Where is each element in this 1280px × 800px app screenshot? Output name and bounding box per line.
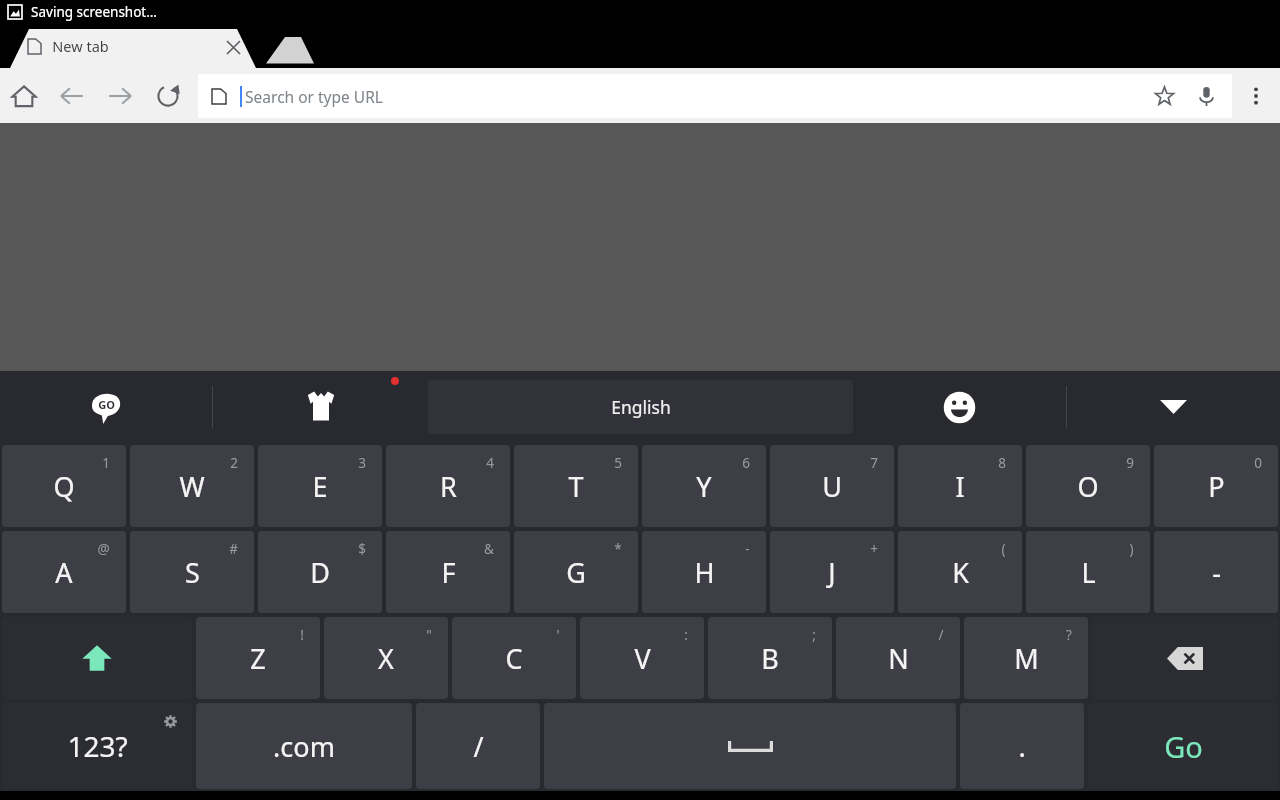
staticText: 6 [742,454,750,472]
button[interactable]: 123? [2,703,192,789]
button[interactable]: M [964,617,1088,699]
staticText: $ [358,540,366,558]
button[interactable]: P [1154,445,1278,527]
button[interactable]: Voice search [1188,78,1224,114]
button[interactable]: Emoji [853,371,1066,443]
staticText: W [179,468,205,505]
staticText: ! [300,626,304,644]
staticText: 7 [870,454,878,472]
staticText: : [684,626,688,644]
staticText: .com [273,728,335,765]
staticText: / [938,626,944,644]
staticText: A [55,554,73,591]
button[interactable]: E [258,445,382,527]
button[interactable]: B [708,617,832,699]
staticText: English [611,395,671,419]
staticText: 123? [67,727,128,765]
staticText: @ [97,540,110,558]
button[interactable]: I [898,445,1022,527]
staticText: 2 [230,454,238,472]
staticText: Z [250,640,266,677]
button[interactable]: Z [196,617,320,699]
button[interactable]: C [452,617,576,699]
button[interactable]: .com [196,703,412,789]
button[interactable]: Back [48,68,96,123]
staticText: V [634,640,651,677]
button[interactable]: G [514,531,638,613]
button[interactable]: Forward [96,68,144,123]
button[interactable]: K [898,531,1022,613]
button[interactable]: Q [2,445,126,527]
staticText: Q [53,468,75,505]
button[interactable]: J [770,531,894,613]
button[interactable]: GO Keyboard [0,371,212,443]
staticText: 9 [1126,454,1134,472]
button[interactable]: Go [1088,703,1278,789]
button[interactable]: Reload [144,68,192,123]
staticText: E [312,468,328,505]
button[interactable]: English [428,380,853,434]
staticText: # [229,540,238,558]
button[interactable]: - [1154,531,1278,613]
button[interactable]: Bookmark [1146,78,1182,114]
button[interactable]: F [386,531,510,613]
staticText: F [441,554,456,591]
button[interactable]: More options [1232,68,1280,123]
button[interactable]: L [1026,531,1150,613]
staticText: 1 [102,454,110,472]
staticText: ' [556,626,560,644]
button[interactable]: Y [642,445,766,527]
staticText: Search or type URL [245,86,383,107]
staticText: New tab [52,36,109,56]
button[interactable]: Search or type URL [198,74,1232,118]
staticText: T [568,468,584,505]
staticText: & [484,540,494,558]
button[interactable]: S [130,531,254,613]
staticText: R [440,468,457,505]
staticText: N [888,640,909,677]
staticText: U [822,468,842,505]
staticText: / [473,728,484,765]
button[interactable]: O [1026,445,1150,527]
button[interactable]: R [386,445,510,527]
button[interactable]: Home [0,68,48,123]
button[interactable]: U [770,445,894,527]
staticText: 0 [1254,454,1262,472]
button[interactable]: X [324,617,448,699]
button[interactable]: Backspace [1092,617,1278,699]
staticText: Go [1164,727,1203,766]
button[interactable]: A [2,531,126,613]
button[interactable]: / [416,703,540,789]
staticText: M [1014,640,1039,677]
staticText: I [955,468,965,505]
staticText: ; [812,626,816,644]
button[interactable]: W [130,445,254,527]
button[interactable]: V [580,617,704,699]
staticText: ( [1001,540,1006,558]
button[interactable]: Hide keyboard [1067,371,1280,443]
button[interactable]: . [960,703,1084,789]
staticText: . [1018,728,1026,765]
staticText: - [1212,554,1221,591]
staticText: 8 [998,454,1006,472]
staticText: GO [98,397,115,412]
staticText: ? [1066,626,1072,644]
button[interactable]: Shift [2,617,192,699]
staticText: S [185,554,200,591]
button[interactable]: N [836,617,960,699]
button[interactable]: Themes [213,371,428,443]
button[interactable]: Space [544,703,956,789]
staticText: 4 [486,454,494,472]
staticText: C [505,640,523,677]
staticText: ) [1129,540,1134,558]
button[interactable]: T [514,445,638,527]
staticText: + [870,540,878,558]
staticText: 3 [358,454,366,472]
button[interactable]: H [642,531,766,613]
staticText: G [566,554,586,591]
button[interactable]: D [258,531,382,613]
button[interactable]: Close tab [219,33,247,61]
staticText: Y [696,468,712,505]
staticText: O [1077,468,1099,505]
staticText: * [614,540,622,558]
